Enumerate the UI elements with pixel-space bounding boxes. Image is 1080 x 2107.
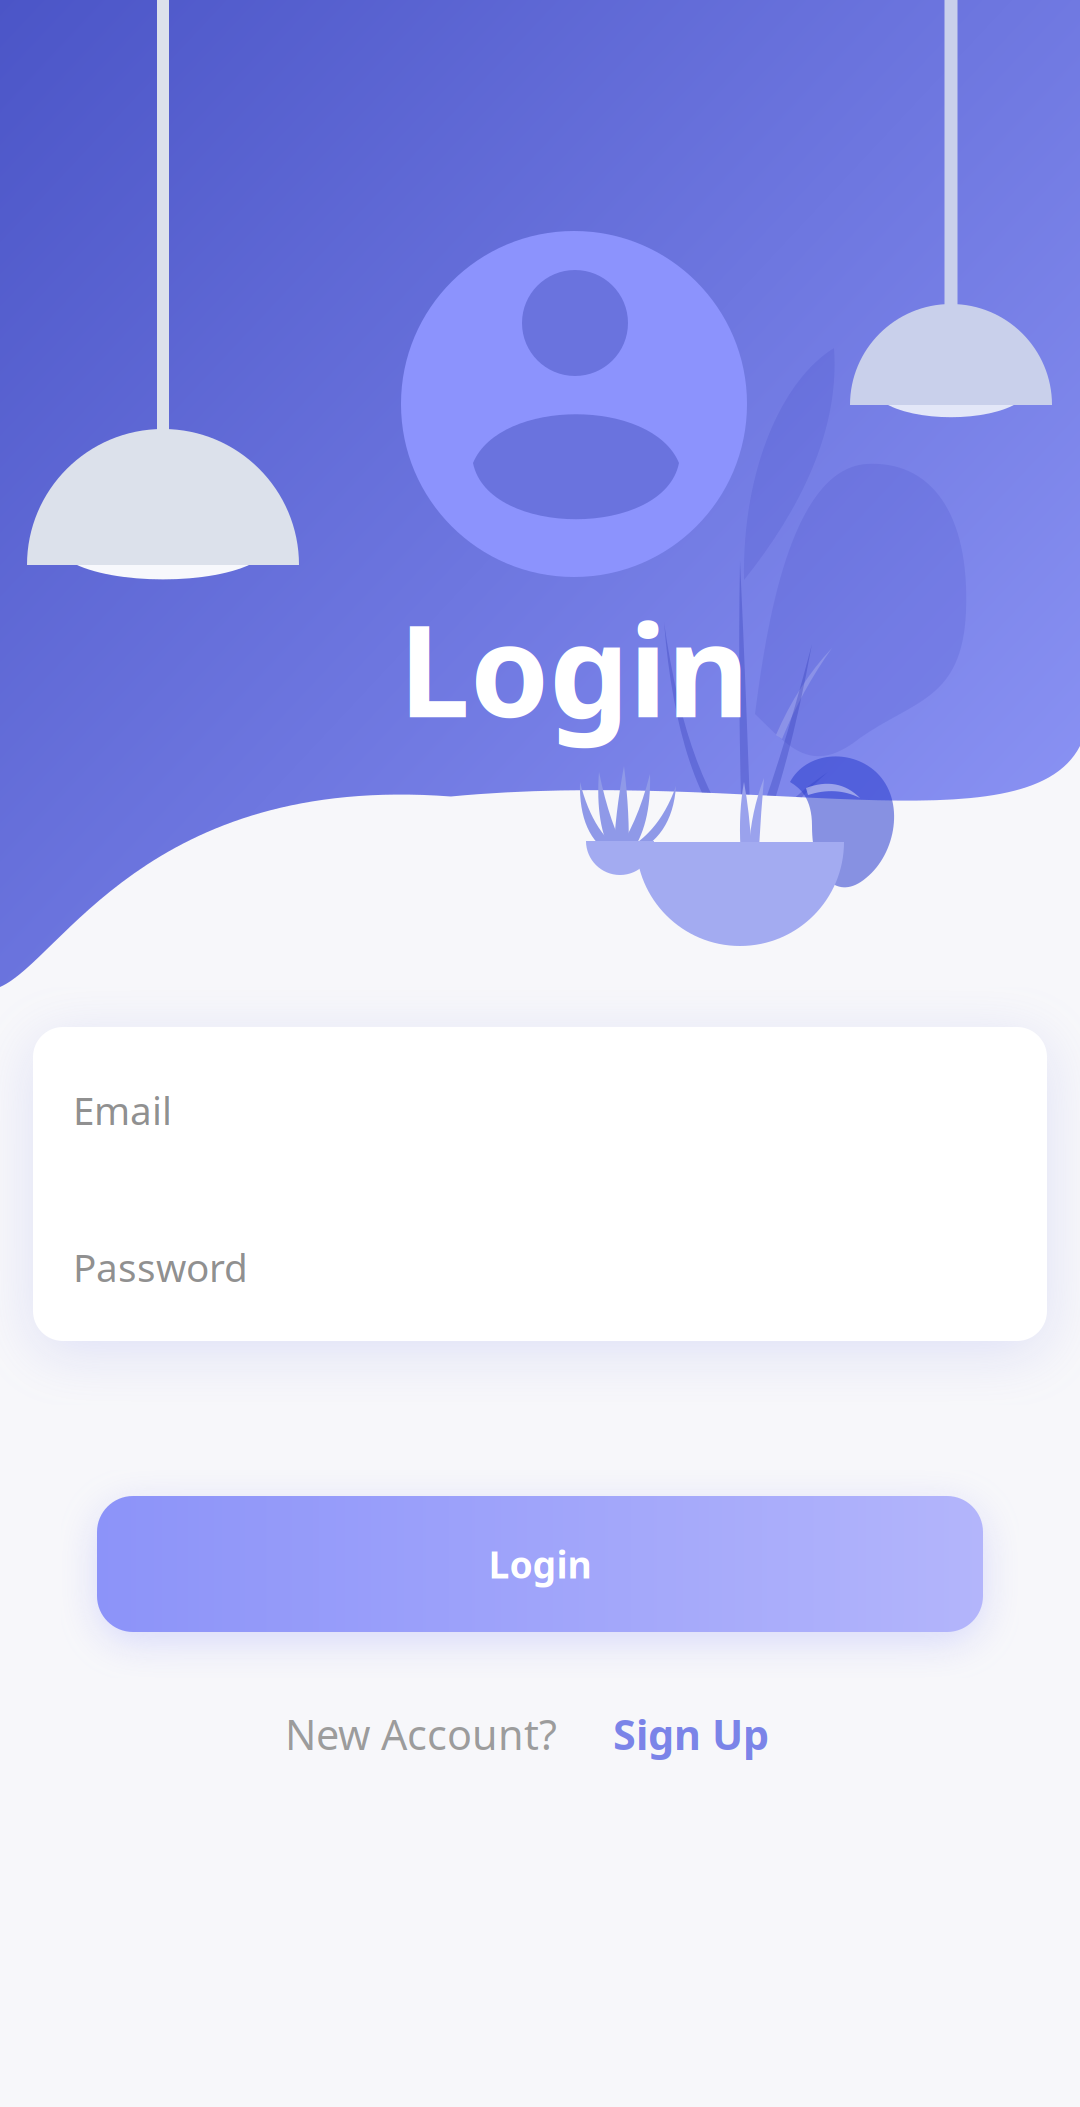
- staticText: Password: [73, 1241, 248, 1293]
- staticText: Email: [73, 1084, 172, 1136]
- staticText: Login: [488, 1539, 591, 1589]
- button[interactable]: Login: [97, 1496, 983, 1632]
- staticText: Login: [399, 584, 749, 752]
- button[interactable]: Sign Up: [613, 1707, 769, 1761]
- staticText: Sign Up: [613, 1707, 769, 1761]
- staticText: New Account?: [285, 1707, 557, 1761]
